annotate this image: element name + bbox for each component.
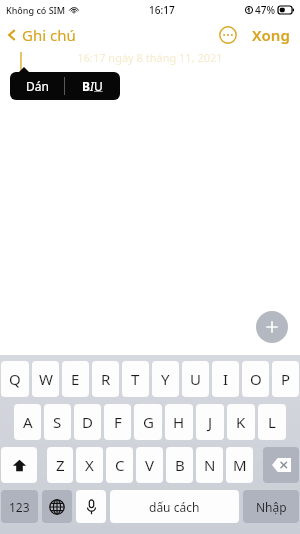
button[interactable]: P [272,361,299,397]
button[interactable]: D [74,404,101,440]
staticText: N [204,455,216,475]
staticText: Y [161,369,170,389]
button[interactable]: Xong [248,22,294,48]
button[interactable]: N [196,447,223,483]
button[interactable]: U [182,361,209,397]
button[interactable]: M [226,447,253,483]
button[interactable]: G [134,404,162,440]
button[interactable]: E [62,361,89,397]
button[interactable]: J [196,404,224,440]
staticText: S [53,412,62,432]
staticText: X [85,455,94,475]
staticText: J [208,412,213,432]
button[interactable]: dấu cách [110,490,239,523]
staticText: T [131,369,140,389]
button[interactable]: O [242,361,269,397]
button[interactable]: Z [47,447,73,483]
staticText: D [82,412,93,432]
button[interactable]: Ghi chú [0,22,82,48]
button[interactable]: W [32,361,59,397]
staticText: Q [9,369,21,389]
staticText: I [90,78,94,94]
button[interactable]: B [166,447,193,483]
button[interactable]: Dán [10,72,64,100]
button[interactable]: I [212,361,239,397]
staticText: 16:17 [149,3,175,17]
button[interactable]: Dictation [76,490,106,523]
button[interactable]: More options [216,23,240,47]
button[interactable]: Change keyboard language [42,490,72,523]
button[interactable]: X [76,447,103,483]
button[interactable]: S [44,404,71,440]
button[interactable]: K [227,404,255,440]
button[interactable]: L [258,404,286,440]
staticText: M [233,455,247,475]
staticText: Dán [26,78,49,94]
staticText: R [101,369,111,389]
staticText: V [145,455,155,475]
button[interactable]: Q [1,361,29,397]
staticText: O [250,369,262,389]
staticText: A [23,412,33,432]
staticText: B [82,78,90,94]
staticText: Nhập [256,499,287,515]
button[interactable]: Delete [263,447,299,483]
staticText: F [114,412,122,432]
staticText: P [281,369,291,389]
button[interactable]: T [122,361,149,397]
staticText: 16:17 ngày 8 tháng 11, 2021 [0,50,300,65]
button[interactable]: Shift [1,447,37,483]
staticText: K [236,412,246,432]
staticText: L [268,412,276,432]
button[interactable]: F [104,404,131,440]
staticText: G [143,412,154,432]
staticText: 47% [255,3,275,17]
staticText: U [190,369,201,389]
button[interactable]: V [136,447,163,483]
staticText: C [115,455,125,475]
button[interactable]: Add attachment [256,311,288,343]
button[interactable]: C [106,447,133,483]
staticText: Xong [252,25,290,45]
staticText: dấu cách [149,499,200,515]
button[interactable]: R [92,361,119,397]
staticText: W [39,369,53,389]
button[interactable]: A [14,404,41,440]
staticText: Z [56,455,65,475]
button[interactable]: Y [152,361,179,397]
staticText: Không có SIM [6,4,66,16]
button[interactable]: B [65,72,120,100]
button[interactable]: 123 [1,490,38,523]
button[interactable]: H [165,404,193,440]
staticText: E [71,369,80,389]
staticText: H [173,412,185,432]
staticText: I [223,369,229,389]
button[interactable]: Nhập [243,490,299,523]
staticText: Ghi chú [22,25,76,45]
staticText: 123 [9,499,30,515]
staticText: U [94,78,103,94]
staticText: B [175,455,185,475]
